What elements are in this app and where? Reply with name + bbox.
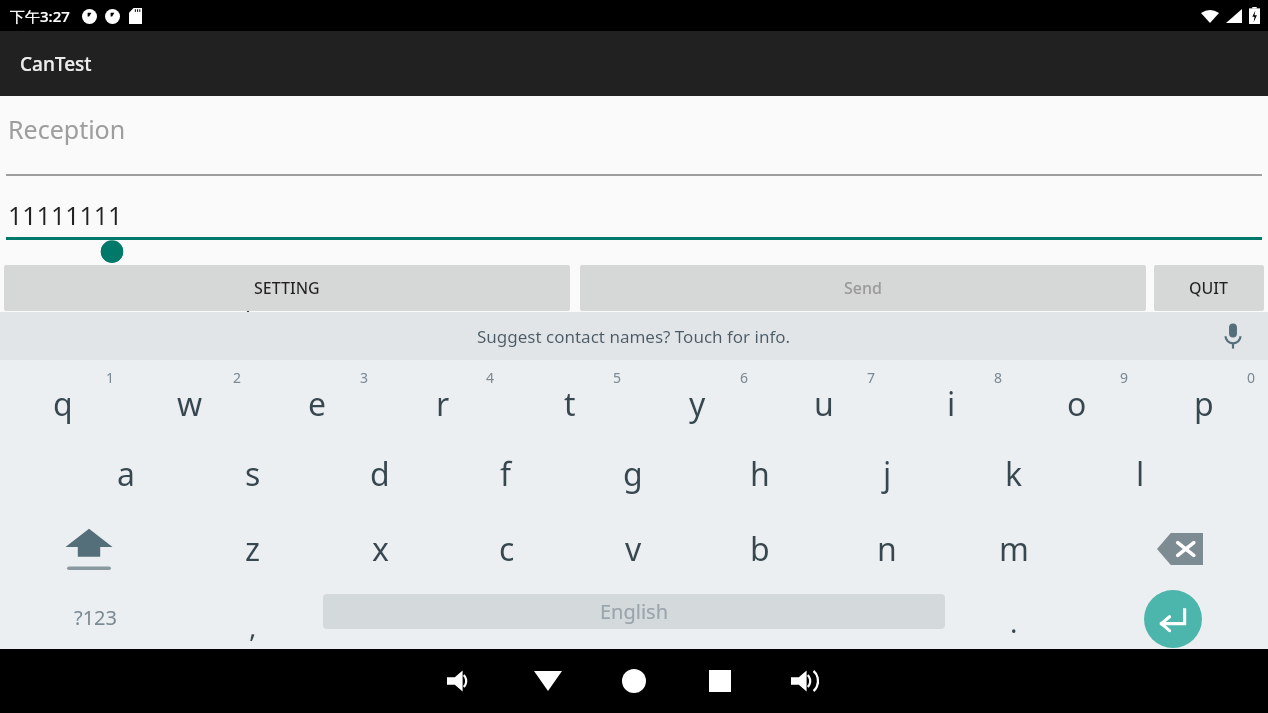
staticText: 8 bbox=[994, 368, 1003, 387]
staticText: . bbox=[1010, 603, 1018, 641]
staticText: 5 bbox=[613, 368, 622, 387]
button[interactable]: b bbox=[703, 511, 817, 586]
staticText: u bbox=[814, 382, 834, 426]
staticText: x bbox=[372, 527, 389, 571]
button[interactable]: English bbox=[323, 594, 945, 629]
button[interactable]: k bbox=[957, 436, 1071, 511]
button[interactable]: g bbox=[576, 436, 690, 511]
button[interactable]: ?123 bbox=[38, 586, 152, 649]
button[interactable]: x bbox=[323, 511, 437, 586]
button[interactable]: s bbox=[196, 436, 310, 511]
button[interactable]: n bbox=[830, 511, 944, 586]
staticText: 下午3:27 bbox=[10, 6, 70, 26]
staticText: d bbox=[370, 452, 390, 496]
staticText: t bbox=[564, 382, 576, 426]
button[interactable]: o bbox=[1020, 360, 1134, 436]
staticText: w bbox=[177, 382, 203, 426]
button[interactable]: e bbox=[260, 360, 374, 436]
staticText: QUIT bbox=[1189, 277, 1229, 299]
button[interactable]: y bbox=[640, 360, 754, 436]
button[interactable]: w bbox=[133, 360, 247, 436]
staticText: k bbox=[1005, 452, 1023, 496]
staticText: z bbox=[245, 527, 261, 571]
button[interactable]: v bbox=[576, 511, 690, 586]
staticText: g bbox=[623, 452, 643, 496]
button[interactable]: q bbox=[6, 360, 120, 436]
staticText: s bbox=[245, 452, 261, 496]
staticText: CanTest bbox=[20, 51, 92, 77]
button[interactable]: Back bbox=[517, 650, 579, 712]
staticText: 2 bbox=[233, 368, 242, 387]
button[interactable]: u bbox=[767, 360, 881, 436]
staticText: a bbox=[117, 452, 135, 496]
button[interactable]: Recents bbox=[689, 650, 751, 712]
staticText: 6 bbox=[740, 368, 749, 387]
staticText: e bbox=[308, 382, 327, 426]
staticText: 4 bbox=[486, 368, 495, 387]
staticText: r bbox=[436, 382, 450, 426]
staticText: Send bbox=[844, 277, 882, 299]
button[interactable]: h bbox=[703, 436, 817, 511]
staticText: 9 bbox=[1120, 368, 1129, 387]
staticText: n bbox=[877, 527, 897, 571]
staticText: 7 bbox=[867, 368, 876, 387]
button[interactable]: i bbox=[894, 360, 1008, 436]
staticText: b bbox=[750, 527, 770, 571]
staticText: p bbox=[1194, 382, 1214, 426]
staticText: l bbox=[1136, 452, 1145, 496]
staticText: English bbox=[600, 598, 669, 625]
button[interactable]: Home bbox=[603, 650, 665, 712]
button[interactable]: j bbox=[830, 436, 944, 511]
button[interactable]: 11111111 bbox=[6, 198, 125, 232]
button[interactable]: a bbox=[69, 436, 183, 511]
button[interactable]: Volume up bbox=[775, 650, 837, 712]
staticText: 3 bbox=[360, 368, 369, 387]
button[interactable]: t bbox=[513, 360, 627, 436]
button[interactable]: l bbox=[1083, 436, 1197, 511]
staticText: 0 bbox=[1247, 368, 1256, 387]
staticText: 1 bbox=[106, 368, 115, 387]
staticText: q bbox=[53, 382, 73, 426]
staticText: o bbox=[1067, 382, 1087, 426]
staticText: m bbox=[999, 527, 1029, 571]
button[interactable]: SETTING bbox=[4, 265, 570, 311]
button[interactable]: QUIT bbox=[1154, 265, 1264, 311]
button[interactable]: Voice input bbox=[1216, 319, 1250, 353]
staticText: j bbox=[883, 452, 892, 496]
button[interactable]: Backspace bbox=[1123, 511, 1237, 586]
button[interactable]: m bbox=[957, 511, 1071, 586]
button[interactable]: Send bbox=[580, 265, 1146, 311]
button[interactable]: p bbox=[1147, 360, 1261, 436]
button[interactable]: . bbox=[957, 586, 1071, 649]
button[interactable]: z bbox=[196, 511, 310, 586]
button[interactable]: Shift bbox=[32, 511, 146, 586]
staticText: , bbox=[249, 607, 257, 645]
button[interactable]: Volume down bbox=[431, 650, 493, 712]
button[interactable]: r bbox=[386, 360, 500, 436]
button[interactable]: f bbox=[449, 436, 563, 511]
staticText: SETTING bbox=[254, 277, 320, 299]
button[interactable]: Enter bbox=[1116, 587, 1230, 650]
staticText: f bbox=[500, 452, 512, 496]
staticText: v bbox=[625, 527, 642, 571]
button[interactable]: Suggest contact names? Touch for info. bbox=[473, 321, 795, 352]
staticText: y bbox=[689, 382, 706, 426]
staticText: ?123 bbox=[74, 604, 117, 631]
button[interactable]: , bbox=[196, 586, 310, 649]
button[interactable]: Reception bbox=[6, 112, 128, 146]
button[interactable]: c bbox=[450, 511, 564, 586]
button[interactable]: d bbox=[323, 436, 437, 511]
staticText: h bbox=[750, 452, 770, 496]
staticText: i bbox=[947, 382, 956, 426]
staticText: c bbox=[499, 527, 515, 571]
